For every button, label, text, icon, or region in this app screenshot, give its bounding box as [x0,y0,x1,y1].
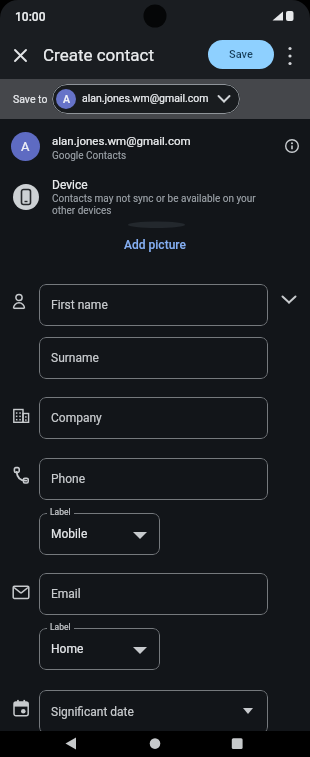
button[interactable] [280,44,300,68]
button[interactable]: Device [0,172,310,222]
staticText: Add picture [124,238,186,252]
button[interactable]: Add picture [0,237,310,253]
staticText: A [21,139,30,154]
button[interactable]: Phone [39,458,268,500]
staticText: Home [51,642,84,656]
staticText: Email [51,587,81,601]
button[interactable]: Email [39,573,268,615]
staticText: Google Contacts [52,150,127,162]
staticText: Phone [51,472,86,486]
staticText: Mobile [51,527,88,541]
staticText: Create contact [43,45,154,65]
staticText: Label [50,507,71,517]
staticText: Surname [51,351,99,365]
button[interactable]: Company [39,397,268,439]
button[interactable]: Home [39,628,160,670]
staticText: Contacts may not sync or be available on… [52,193,256,205]
button[interactable]: Mobile [39,513,160,555]
staticText: Device [52,178,88,192]
button[interactable]: A [52,84,240,114]
staticText: Label [50,622,71,632]
staticText: 10:00 [15,10,46,24]
staticText: alan.jones.wm@gmail.com [82,92,209,104]
button[interactable]: Save [208,40,274,69]
staticText: Save to [13,93,48,105]
button[interactable]: First name [39,284,268,326]
staticText: other devices [52,205,112,217]
staticText: Save [229,48,253,61]
button[interactable]: Significant date [39,690,268,734]
staticText: First name [51,298,108,312]
button[interactable] [9,44,32,67]
button[interactable]: A [0,124,310,168]
staticText: Company [51,411,102,425]
staticText: alan.jones.wm@gmail.com [52,134,191,147]
staticText: Significant date [51,705,134,719]
staticText: A [63,93,70,105]
button[interactable]: Surname [39,337,268,379]
